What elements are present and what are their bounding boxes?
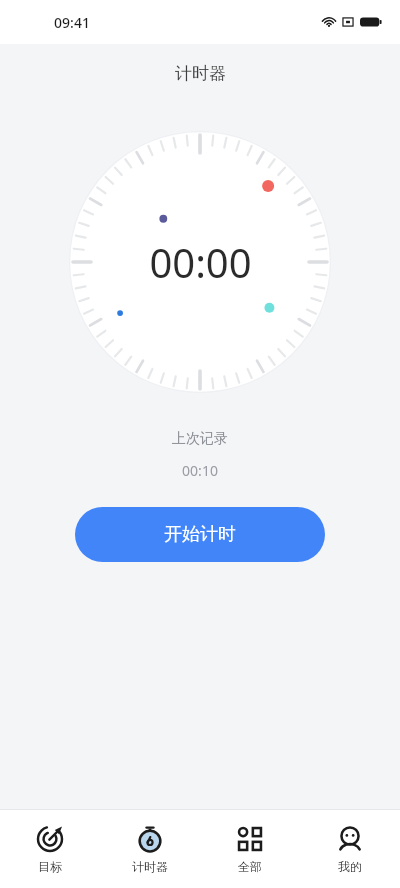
staticText: 开始计时 [164, 523, 236, 546]
other: 全部 [235, 824, 265, 854]
other: 目标 [35, 824, 65, 854]
button[interactable]: 开始计时 [75, 507, 325, 562]
button[interactable]: 我的 [300, 810, 400, 888]
other: 计时器 [135, 824, 165, 854]
staticText: 目标 [38, 859, 62, 874]
staticText: 全部 [238, 859, 262, 874]
other: 我的 [335, 824, 365, 854]
button[interactable]: 全部 [200, 810, 300, 888]
staticText: 计时器 [132, 859, 168, 874]
staticText: 09:41 [54, 13, 90, 32]
staticText: 我的 [338, 859, 362, 874]
staticText: 00:10 [0, 461, 400, 480]
staticText: 计时器 [175, 63, 226, 84]
staticText: 00:00 [149, 235, 252, 289]
button[interactable]: 目标 [0, 810, 100, 888]
button[interactable]: 计时器 [100, 810, 200, 888]
staticText: 上次记录 [0, 430, 400, 448]
